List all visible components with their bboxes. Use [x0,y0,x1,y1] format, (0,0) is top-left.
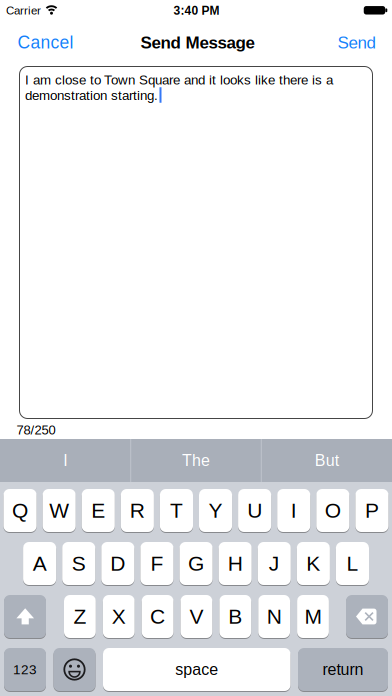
button[interactable]: Q [3,489,37,532]
button[interactable]: N [258,595,290,638]
button[interactable]: Y [199,489,232,532]
button[interactable]: P [355,489,388,532]
staticText: Y [209,499,223,522]
button[interactable]: J [258,542,291,585]
staticText: C [150,605,165,628]
button[interactable]: R [121,489,154,532]
staticText: Send [337,33,375,52]
staticText: But [315,452,339,469]
staticText: K [306,552,320,575]
button[interactable]: G [179,542,213,585]
button[interactable]: H [219,542,252,585]
staticText: The [182,452,210,469]
button[interactable]: M [297,595,329,638]
button[interactable]: return [298,648,388,691]
button[interactable]: Emoji [53,648,95,691]
staticText: Q [12,499,28,522]
staticText: D [110,552,125,575]
staticText: M [304,605,321,628]
staticText: F [150,552,163,575]
button[interactable]: V [181,595,212,638]
staticText: return [322,661,363,678]
button[interactable]: 123 [4,648,46,691]
staticText: 3:40 PM [173,4,219,17]
button[interactable]: C [142,595,173,638]
staticText: Cancel [17,33,73,52]
button[interactable]: O [316,489,349,532]
staticText: X [112,605,126,628]
staticText: I [291,499,297,522]
button[interactable]: Delete [346,595,388,638]
button[interactable]: Send [337,33,375,52]
button[interactable]: X [103,595,135,638]
staticText: G [188,552,204,575]
button[interactable]: E [82,489,115,532]
staticText: L [346,552,358,575]
staticText: O [325,499,341,522]
button[interactable]: Z [64,595,96,638]
staticText: N [267,605,282,628]
button[interactable]: Shift [4,595,46,638]
button[interactable]: A [23,542,56,585]
staticText: V [189,605,203,628]
button[interactable]: But [267,439,387,482]
staticText: H [228,552,243,575]
staticText: space [175,661,218,678]
button[interactable]: Cancel [17,33,73,52]
staticText: Send Message [140,33,254,52]
button[interactable]: space [103,648,290,691]
staticText: Z [73,605,86,628]
staticText: 78/250 [16,423,55,437]
button[interactable]: The [136,439,256,482]
staticText: Carrier [6,4,41,17]
staticText: U [247,499,262,522]
button[interactable]: S [62,542,95,585]
button[interactable]: I [277,489,310,532]
staticText: S [72,552,86,575]
button[interactable]: B [219,595,251,638]
staticText: E [91,499,105,522]
button[interactable]: I [5,439,125,482]
staticText: J [269,552,280,575]
button[interactable]: D [101,542,134,585]
staticText: P [365,499,379,522]
staticText: 123 [13,662,37,677]
button[interactable]: L [336,542,369,585]
staticText: I am close to Town Square and it looks l… [25,73,333,87]
button[interactable]: F [140,542,173,585]
staticText: R [130,499,145,522]
button[interactable]: U [238,489,271,532]
staticText: T [170,499,183,522]
staticText: demonstration starting. [25,88,158,103]
staticText: I [63,452,67,469]
button[interactable]: W [43,489,76,532]
staticText: A [33,552,47,575]
staticText: W [49,499,69,522]
button[interactable]: K [297,542,330,585]
button[interactable]: T [160,489,193,532]
staticText: B [228,605,242,628]
